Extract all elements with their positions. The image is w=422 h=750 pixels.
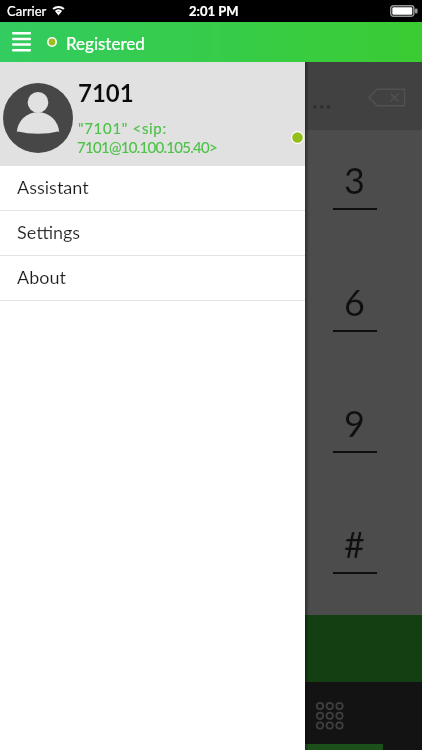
button[interactable]: 3 [281,130,422,252]
button[interactable]: Open navigation drawer [0,22,43,62]
staticText: "7101" <sip: [78,119,167,137]
staticText: 6 [344,280,365,323]
staticText: 7101 [78,78,134,107]
staticText: 1 [63,158,84,201]
staticText: 9 [344,401,365,444]
button[interactable]: # [281,494,422,615]
staticText: 2:01 PM [189,3,239,19]
staticText: About [17,266,66,288]
button[interactable]: 9 [281,373,422,494]
staticText: 3 [344,158,365,201]
button[interactable]: Assistant [0,166,305,211]
button[interactable]: 6 [281,252,422,373]
staticText: 4 [63,280,84,323]
staticText: Carrier [7,3,47,19]
button[interactable]: 4 [0,252,140,373]
staticText: # [344,522,365,565]
staticText: 5 [203,280,224,323]
staticText: Settings [17,221,81,243]
button[interactable]: 1 [0,130,140,252]
staticText: Assistant [17,176,89,198]
staticText: 2 [203,158,224,201]
button[interactable]: 2 [140,130,281,252]
staticText: Registered [66,33,145,53]
button[interactable]: About [0,256,305,301]
button[interactable]: Backspace [361,81,413,113]
button[interactable]: Keypad tab [277,682,383,750]
button[interactable]: Settings [0,211,305,256]
button[interactable]: 5 [140,252,281,373]
staticText: 7101@10.100.105.40> [77,138,217,156]
